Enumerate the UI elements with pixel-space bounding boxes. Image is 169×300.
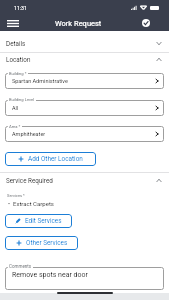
staticText: Remove spots near door: [12, 271, 88, 279]
button[interactable]: Spartan Administrative: [5, 73, 164, 89]
staticText: 11:31: [14, 5, 27, 11]
staticText: Area *: [9, 124, 21, 129]
button[interactable]: Add Other Location: [5, 152, 96, 166]
button[interactable]: Service Required: [0, 172, 169, 188]
button[interactable]: Amphitheater: [5, 126, 164, 142]
staticText: Spartan Administrative: [12, 78, 68, 84]
staticText: Work Request: [55, 19, 102, 28]
staticText: Amphitheater: [12, 131, 46, 137]
button[interactable]: Other Services: [5, 236, 78, 250]
staticText: All: [12, 105, 19, 111]
staticText: Building *: [9, 71, 27, 76]
staticText: Details: [6, 40, 26, 47]
button[interactable]: Edit Services: [5, 214, 72, 228]
staticText: Other Services: [26, 239, 68, 247]
button[interactable]: Open navigation menu: [5, 15, 21, 31]
button[interactable]: All: [5, 100, 164, 116]
button[interactable]: Remove spots near door: [5, 267, 164, 290]
staticText: Service Required: [6, 177, 53, 184]
button[interactable]: Details: [0, 35, 169, 51]
button[interactable]: Location: [0, 51, 169, 67]
button[interactable]: Submit work request: [140, 17, 152, 29]
staticText: Location: [6, 56, 31, 63]
staticText: Comments: [9, 264, 32, 269]
staticText: Edit Services: [25, 217, 62, 225]
staticText: • Extract Carpets: [8, 200, 54, 207]
staticText: Add Other Location: [28, 155, 83, 163]
staticText: Services *: [7, 193, 25, 198]
staticText: Building Level: [9, 97, 35, 102]
